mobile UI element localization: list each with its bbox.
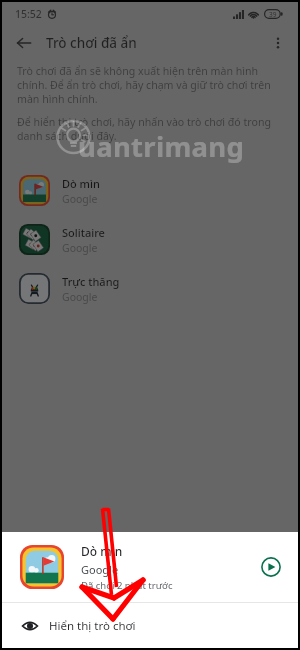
button[interactable]: Dò mìn bbox=[2, 532, 298, 602]
button[interactable]: Trực thăng bbox=[2, 264, 298, 313]
staticText: Dò mìn bbox=[81, 543, 123, 559]
staticText: 15:52 bbox=[15, 7, 42, 21]
button[interactable]: Hiển thị trò chơi bbox=[2, 603, 298, 648]
staticText: Google bbox=[81, 562, 119, 577]
staticText: Hiển thị trò chơi bbox=[49, 618, 136, 634]
button[interactable]: More options bbox=[264, 29, 292, 57]
staticText: Dò mìn bbox=[62, 176, 100, 191]
staticText: Đã chơi 2 phút trước bbox=[81, 579, 173, 592]
staticText: uantrimang bbox=[78, 128, 245, 165]
staticText: Trực thăng bbox=[62, 274, 120, 289]
staticText: 39 bbox=[269, 10, 277, 19]
staticText: Solitaire bbox=[62, 225, 105, 240]
staticText: Google bbox=[62, 192, 98, 206]
button[interactable]: Solitaire bbox=[2, 215, 298, 264]
staticText: Google bbox=[62, 290, 98, 304]
button[interactable]: Play bbox=[256, 552, 286, 582]
button[interactable]: Dò mìn bbox=[2, 166, 298, 215]
staticText: Trò chơi đã ẩn sẽ không xuất hiện trên m… bbox=[17, 64, 274, 106]
staticText: Trò chơi đã ẩn bbox=[46, 34, 137, 52]
staticText: Để hiển thị trò chơi, hãy nhấn vào trò c… bbox=[17, 115, 274, 143]
staticText: Google bbox=[62, 241, 98, 255]
button[interactable]: Back bbox=[10, 29, 38, 57]
